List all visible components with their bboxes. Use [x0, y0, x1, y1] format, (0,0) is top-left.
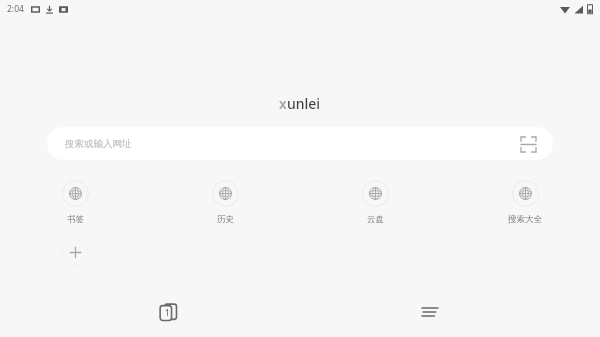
button[interactable]: Tabs, 1 open [152, 296, 184, 328]
button[interactable]: Add shortcut [62, 239, 89, 266]
button[interactable]: 搜索大全 [450, 178, 600, 227]
button[interactable]: 历史 [150, 178, 300, 227]
button[interactable]: 书签 [0, 178, 150, 227]
button[interactable]: Scan QR code [517, 133, 539, 155]
staticText: 历史 [217, 214, 234, 225]
staticText: x [279, 94, 287, 113]
staticText: 1 [165, 307, 170, 318]
button[interactable]: 云盘 [300, 178, 450, 227]
staticText: 搜索或输入网址 [65, 138, 517, 150]
button[interactable]: Menu [414, 296, 446, 328]
staticText: 云盘 [367, 214, 384, 225]
staticText: 书签 [67, 214, 84, 225]
staticText: unlei [287, 94, 321, 113]
button[interactable]: 搜索或输入网址 [47, 127, 553, 160]
staticText: 2:04 [7, 3, 24, 15]
staticText: 搜索大全 [508, 214, 542, 225]
